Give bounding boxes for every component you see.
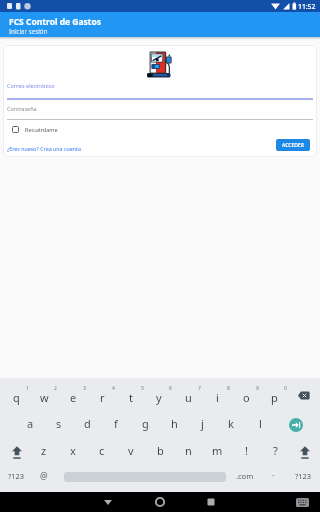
- staticText: e: [70, 390, 77, 405]
- staticText: v: [128, 443, 134, 458]
- staticText: ?: [273, 443, 278, 458]
- button[interactable]: f: [102, 414, 130, 432]
- staticText: Contraseña: [7, 105, 37, 112]
- button[interactable]: x: [59, 441, 87, 459]
- staticText: q: [13, 390, 20, 405]
- staticText: 4: [112, 385, 115, 392]
- button[interactable]: s: [45, 414, 73, 432]
- staticText: 3: [83, 385, 86, 392]
- button[interactable]: e: [59, 388, 87, 406]
- button[interactable]: [9, 443, 25, 460]
- button[interactable]: [152, 494, 168, 510]
- button[interactable]: ¿Eres nuevo? Crea una cuenta: [7, 145, 81, 152]
- staticText: f: [114, 416, 118, 431]
- staticText: 11:52: [298, 2, 316, 11]
- staticText: 8: [227, 385, 230, 392]
- staticText: n: [185, 443, 192, 458]
- staticText: m: [212, 443, 223, 458]
- staticText: 2: [54, 385, 57, 392]
- staticText: p: [271, 390, 278, 405]
- button[interactable]: ?: [261, 441, 289, 459]
- staticText: 9: [256, 385, 259, 392]
- staticText: w: [40, 390, 49, 405]
- staticText: c: [99, 443, 105, 458]
- button[interactable]: g: [131, 414, 159, 432]
- staticText: 6: [169, 385, 172, 392]
- button[interactable]: ·: [259, 467, 287, 485]
- staticText: ·: [272, 470, 275, 482]
- button[interactable]: n: [174, 441, 202, 459]
- button[interactable]: [297, 391, 311, 401]
- staticText: d: [84, 416, 91, 431]
- staticText: 5: [141, 385, 144, 392]
- button[interactable]: h: [160, 414, 188, 432]
- button[interactable]: c: [88, 441, 116, 459]
- staticText: u: [185, 390, 192, 405]
- button[interactable]: p: [260, 388, 288, 406]
- button[interactable]: ACCEDER: [276, 139, 310, 151]
- staticText: ACCEDER: [282, 142, 304, 149]
- button[interactable]: w: [30, 388, 58, 406]
- staticText: g: [142, 416, 149, 431]
- button[interactable]: !: [232, 441, 260, 459]
- button[interactable]: [203, 494, 219, 510]
- button[interactable]: u: [174, 388, 202, 406]
- button[interactable]: o: [232, 388, 260, 406]
- staticText: z: [41, 443, 47, 458]
- button[interactable]: t: [117, 388, 145, 406]
- button[interactable]: d: [73, 414, 101, 432]
- button[interactable]: .com: [231, 467, 259, 485]
- button[interactable]: a: [16, 414, 44, 432]
- button[interactable]: z: [30, 441, 58, 459]
- staticText: t: [129, 390, 133, 405]
- staticText: 7: [198, 385, 201, 392]
- button[interactable]: b: [146, 441, 174, 459]
- staticText: 1: [26, 385, 29, 392]
- staticText: ?123: [8, 471, 25, 481]
- staticText: h: [171, 416, 178, 431]
- staticText: b: [157, 443, 164, 458]
- button[interactable]: [7, 78, 313, 100]
- staticText: s: [56, 416, 62, 431]
- button[interactable]: j: [188, 414, 216, 432]
- button[interactable]: [292, 494, 312, 510]
- staticText: @: [40, 470, 48, 482]
- button[interactable]: v: [117, 441, 145, 459]
- button[interactable]: [297, 443, 313, 460]
- button[interactable]: q: [2, 388, 30, 406]
- button[interactable]: [7, 102, 313, 120]
- staticText: Recuérdame: [25, 126, 58, 133]
- button[interactable]: m: [203, 441, 231, 459]
- button[interactable]: y: [145, 388, 173, 406]
- staticText: j: [201, 416, 204, 431]
- button[interactable]: k: [217, 414, 245, 432]
- button[interactable]: [289, 418, 303, 432]
- button[interactable]: i: [203, 388, 231, 406]
- button[interactable]: Recuérdame: [12, 126, 58, 133]
- staticText: k: [228, 416, 234, 431]
- staticText: x: [70, 443, 76, 458]
- button[interactable]: [100, 494, 116, 510]
- staticText: a: [27, 416, 34, 431]
- staticText: l: [259, 416, 262, 431]
- staticText: y: [156, 390, 162, 405]
- staticText: !: [245, 443, 248, 458]
- button[interactable]: r: [88, 388, 116, 406]
- staticText: ?123: [295, 471, 312, 481]
- staticText: .com: [236, 471, 254, 481]
- staticText: i: [216, 390, 219, 405]
- button[interactable]: l: [246, 414, 274, 432]
- button[interactable]: @: [30, 467, 58, 485]
- staticText: Iniciar sesión: [9, 27, 48, 35]
- staticText: o: [243, 390, 250, 405]
- staticText: FCS Control de Gastos: [9, 16, 102, 28]
- button[interactable]: ?123: [289, 467, 317, 485]
- staticText: Correo electrónico: [7, 82, 55, 89]
- button[interactable]: ?123: [2, 467, 30, 485]
- staticText: r: [100, 390, 105, 405]
- staticText: 0: [284, 385, 287, 392]
